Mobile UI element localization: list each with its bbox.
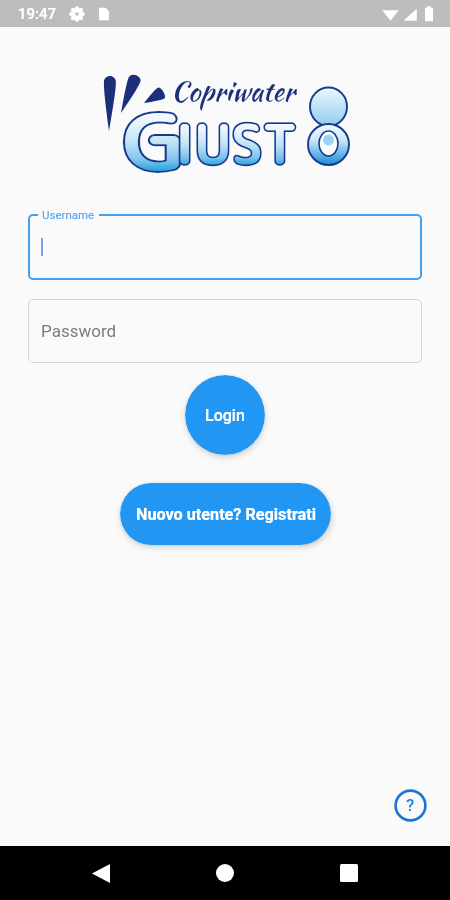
- staticText: IUST: [175, 105, 298, 182]
- button[interactable]: Help: [393, 788, 427, 822]
- button[interactable]: [28, 214, 422, 280]
- staticText: Password: [41, 321, 117, 341]
- staticText: ?: [406, 795, 415, 815]
- staticText: Nuovo utente? Registrati: [136, 505, 316, 524]
- staticText: 19:47: [18, 5, 57, 23]
- staticText: IUST: [175, 105, 298, 182]
- button[interactable]: Password: [28, 299, 422, 363]
- button[interactable]: Recent apps: [311, 854, 387, 892]
- button[interactable]: Login: [185, 375, 265, 455]
- button[interactable]: Nuovo utente? Registrati: [120, 483, 331, 545]
- button[interactable]: Home: [187, 854, 263, 892]
- staticText: Copriwater: [171, 71, 295, 112]
- button[interactable]: Back: [63, 854, 139, 892]
- staticText: G: [122, 87, 186, 194]
- staticText: G: [122, 87, 186, 194]
- staticText: Login: [205, 406, 245, 425]
- staticText: Username: [42, 208, 95, 221]
